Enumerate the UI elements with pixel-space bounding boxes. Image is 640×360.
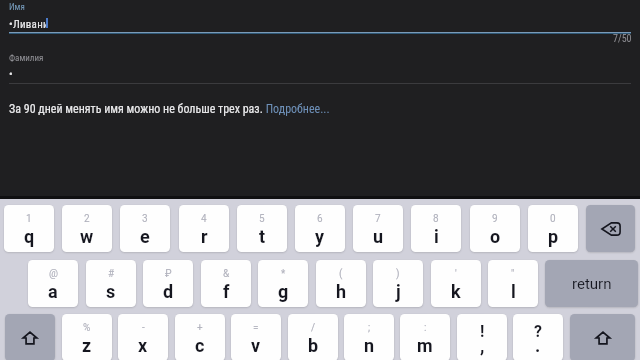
staticText: ! (480, 322, 485, 341)
staticText: o (490, 226, 501, 247)
button[interactable]: ₽ (143, 260, 193, 307)
staticText: 4 (201, 213, 207, 225)
button[interactable]: ) (373, 260, 423, 307)
button[interactable]: ' (431, 260, 481, 307)
staticText: 1 (26, 213, 32, 225)
staticText: + (197, 322, 203, 334)
button[interactable]: ? (513, 314, 563, 360)
staticText: ) (396, 268, 400, 280)
staticText: 3 (142, 213, 148, 225)
staticText: 6 (317, 213, 323, 225)
button[interactable]: ; (344, 314, 394, 360)
staticText: g (278, 281, 289, 302)
staticText: t (259, 226, 266, 247)
staticText: 9 (492, 213, 498, 225)
staticText: u (373, 226, 384, 247)
staticText: 7 (375, 213, 381, 225)
button[interactable]: 9 (470, 205, 520, 252)
button[interactable]: 7 (353, 205, 403, 252)
staticText: j (396, 281, 401, 302)
staticText: i (434, 226, 439, 247)
staticText: w (80, 226, 94, 247)
button[interactable]: Backspace (586, 205, 635, 252)
staticText: l (511, 281, 516, 302)
staticText: y (315, 226, 325, 247)
button[interactable]: 6 (295, 205, 345, 252)
button[interactable]: 4 (179, 205, 229, 252)
staticText: r (201, 226, 208, 247)
staticText: x (138, 335, 148, 356)
button[interactable]: % (62, 314, 112, 360)
staticText: a (48, 281, 58, 302)
staticText: c (195, 335, 205, 356)
button[interactable]: : (400, 314, 450, 360)
staticText: h (336, 281, 347, 302)
staticText: 8 (433, 213, 439, 225)
button[interactable]: / (288, 314, 338, 360)
staticText: k (451, 281, 461, 302)
staticText: Имя (9, 2, 25, 13)
staticText: . (535, 335, 541, 356)
staticText: 5 (259, 213, 265, 225)
staticText: Фамилия (9, 53, 44, 64)
staticText: / (311, 322, 316, 334)
button[interactable]: 2 (62, 205, 112, 252)
button[interactable]: * (258, 260, 308, 307)
staticText: d (163, 281, 174, 302)
staticText: e (140, 226, 150, 247)
button[interactable]: Shift (570, 314, 635, 360)
button[interactable]: Shift (5, 314, 55, 360)
staticText: , (480, 335, 485, 356)
staticText: q (24, 226, 35, 247)
button[interactable]: & (201, 260, 251, 307)
staticText: & (223, 268, 230, 280)
staticText: •Ливани (9, 18, 49, 31)
staticText: z (82, 335, 92, 356)
button[interactable]: # (86, 260, 136, 307)
button[interactable]: - (118, 314, 168, 360)
staticText: v (251, 335, 261, 356)
staticText: 2 (84, 213, 90, 225)
button[interactable]: ( (316, 260, 366, 307)
staticText: n (364, 335, 375, 356)
button[interactable]: @ (28, 260, 78, 307)
staticText: @ (49, 268, 58, 280)
staticText: % (83, 322, 91, 334)
staticText: ; (368, 322, 371, 334)
staticText: За 90 дней менять имя можно не больше тр… (9, 102, 330, 116)
staticText: " (511, 268, 515, 280)
staticText: m (417, 335, 433, 356)
button[interactable]: + (175, 314, 225, 360)
button[interactable]: 8 (411, 205, 461, 252)
staticText: # (108, 268, 115, 280)
staticText: s (106, 281, 116, 302)
staticText: ? (534, 322, 542, 341)
staticText: 0 (550, 213, 556, 225)
staticText: f (223, 281, 230, 302)
staticText: 7/50 (613, 33, 632, 45)
staticText: p (548, 226, 559, 247)
staticText: * (281, 268, 286, 280)
staticText: - (142, 322, 145, 334)
button[interactable]: 3 (120, 205, 170, 252)
button[interactable]: ! (457, 314, 507, 360)
button[interactable]: 5 (237, 205, 287, 252)
staticText: ' (455, 268, 457, 280)
staticText: : (424, 322, 427, 334)
staticText: = (253, 322, 259, 334)
button[interactable]: 1 (4, 205, 54, 252)
staticText: return (572, 275, 612, 293)
button[interactable]: " (488, 260, 538, 307)
staticText: ₽ (165, 268, 172, 280)
button[interactable]: = (231, 314, 281, 360)
staticText: • (9, 68, 13, 81)
button[interactable]: return (545, 260, 638, 307)
staticText: b (308, 335, 319, 356)
button[interactable]: 0 (528, 205, 578, 252)
staticText: ( (339, 268, 343, 280)
